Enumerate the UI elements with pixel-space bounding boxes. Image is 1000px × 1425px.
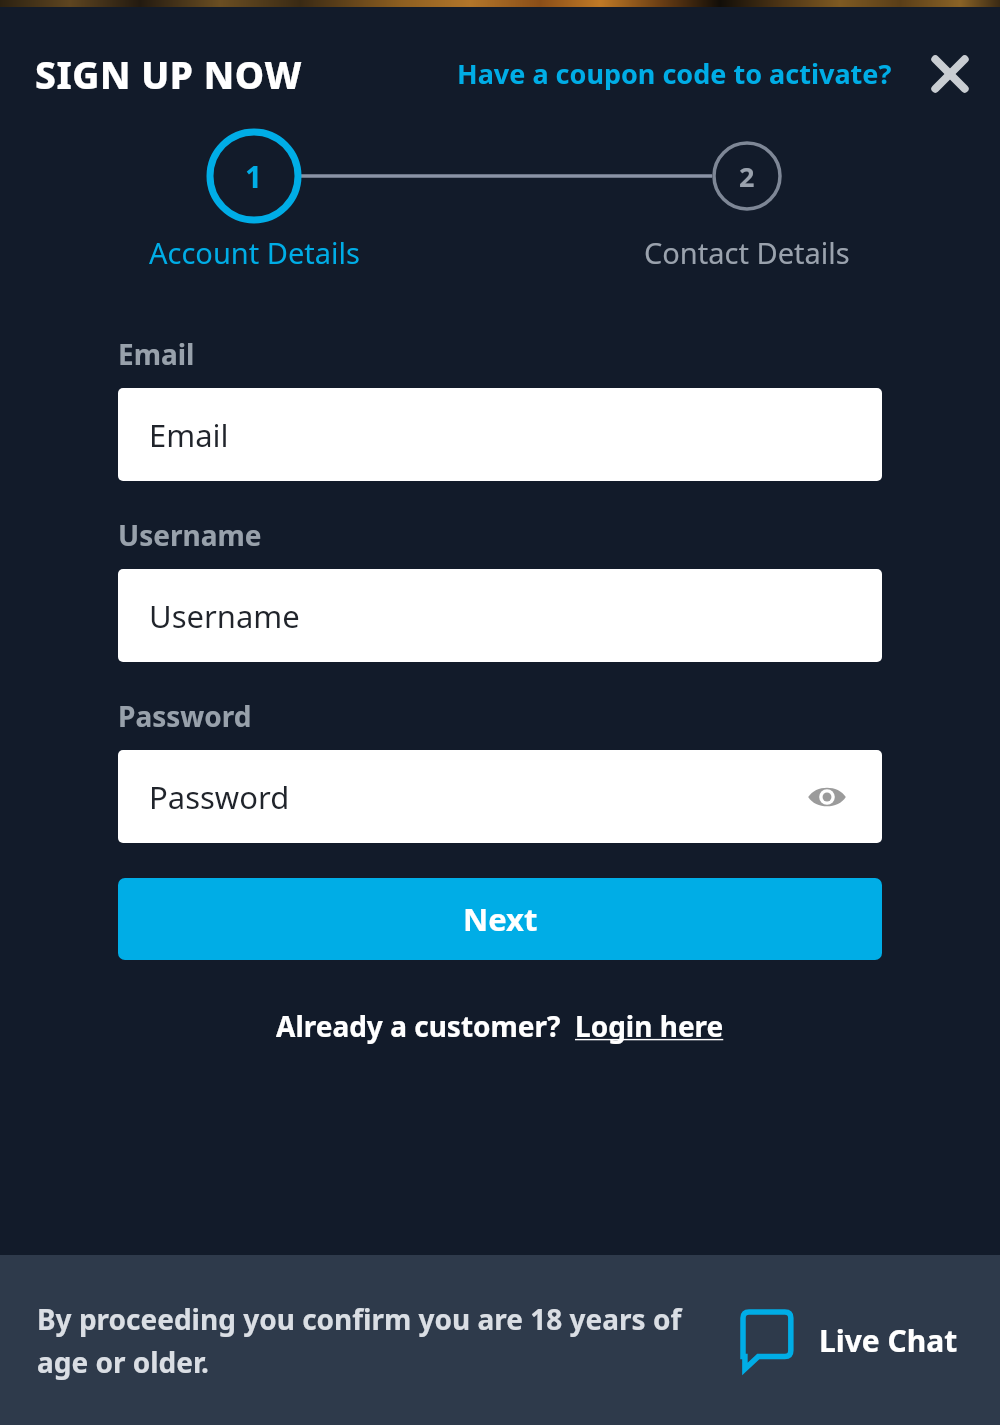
staticText: Username [149, 595, 300, 637]
staticText: SIGN UP NOW [35, 49, 303, 99]
button[interactable]: Email [118, 388, 882, 481]
staticText: Account Details [149, 233, 360, 272]
staticText: 2 [739, 158, 755, 195]
button[interactable]: Username [118, 569, 882, 662]
staticText: Have a coupon code to activate? [457, 55, 892, 92]
button[interactable]: Login here [575, 1007, 724, 1045]
staticText: Already a customer? [276, 1007, 575, 1045]
staticText: Password [118, 697, 252, 735]
staticText: Login here [575, 1007, 724, 1045]
staticText: 1 [245, 156, 263, 197]
staticText: Next [463, 898, 538, 940]
button[interactable]: Show password [804, 774, 850, 820]
button[interactable]: Password [118, 750, 882, 843]
staticText: Email [118, 335, 195, 373]
staticText: By proceeding you confirm you are 18 yea… [37, 1300, 682, 1381]
staticText: Email [149, 414, 229, 456]
staticText: Password [149, 776, 290, 818]
button[interactable]: Next [118, 878, 882, 960]
button[interactable]: Have a coupon code to activate? [455, 49, 894, 98]
staticText: Contact Details [644, 233, 850, 272]
button[interactable]: Close [929, 53, 971, 95]
other: Live Chat [743, 1312, 795, 1369]
button[interactable]: Live Chat [743, 1312, 958, 1369]
staticText: Live Chat [819, 1320, 958, 1361]
staticText: Username [118, 516, 262, 554]
